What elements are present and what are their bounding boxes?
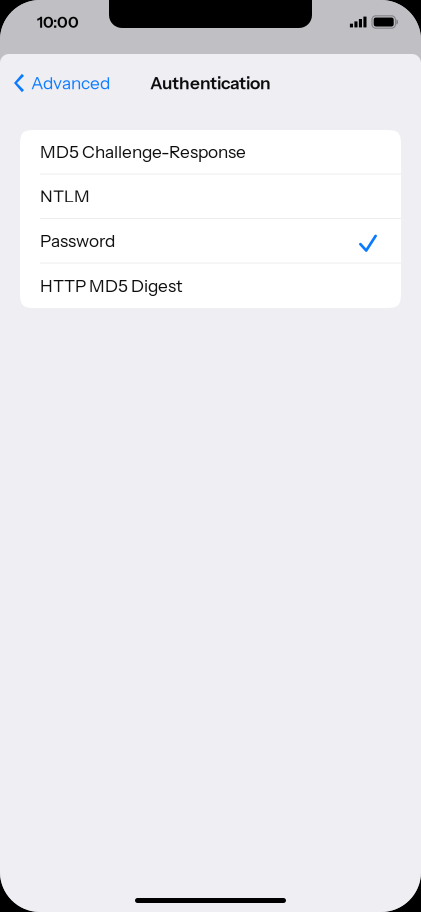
button[interactable]: HTTP MD5 Digest bbox=[20, 263, 401, 308]
staticText: NTLM bbox=[40, 186, 90, 207]
staticText: MD5 Challenge-Response bbox=[40, 141, 246, 162]
staticText: HTTP MD5 Digest bbox=[40, 275, 182, 296]
button[interactable]: Password bbox=[20, 219, 401, 263]
staticText: Advanced bbox=[31, 72, 110, 93]
staticText: Authentication bbox=[150, 72, 271, 93]
button[interactable]: MD5 Challenge-Response bbox=[20, 130, 401, 174]
button[interactable]: NTLM bbox=[20, 174, 401, 219]
button[interactable]: Advanced bbox=[0, 61, 122, 105]
staticText: Password bbox=[40, 230, 115, 251]
staticText: 10:00 bbox=[37, 12, 79, 32]
